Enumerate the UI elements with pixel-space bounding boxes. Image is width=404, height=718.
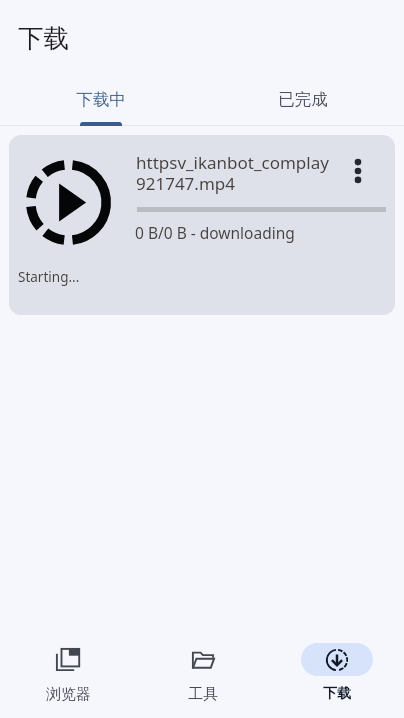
staticText: 下载中 bbox=[76, 89, 126, 110]
button[interactable]: 浏览器 bbox=[23, 643, 113, 704]
staticText: 浏览器 bbox=[46, 685, 91, 704]
staticText: 工具 bbox=[188, 685, 218, 704]
staticText: 下载 bbox=[323, 685, 351, 703]
button[interactable]: More options bbox=[342, 155, 374, 187]
staticText: 已完成 bbox=[278, 89, 328, 110]
staticText: 下载 bbox=[18, 22, 69, 54]
button[interactable]: 下载中 bbox=[0, 77, 202, 126]
button[interactable]: httpsv_ikanbot_complay 921747.mp4 bbox=[9, 135, 395, 315]
button[interactable]: 已完成 bbox=[202, 77, 404, 126]
staticText: httpsv_ikanbot_complay 921747.mp4 bbox=[136, 151, 336, 195]
staticText: 0 B/0 B - downloading bbox=[135, 222, 295, 243]
button[interactable]: 下载 bbox=[292, 643, 382, 703]
staticText: Starting... bbox=[18, 268, 80, 286]
button[interactable]: 工具 bbox=[158, 643, 248, 704]
